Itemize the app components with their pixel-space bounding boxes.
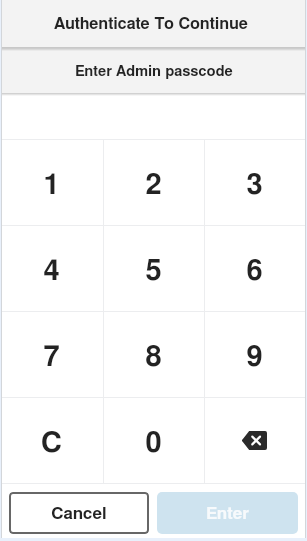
staticText: 5 bbox=[145, 257, 162, 286]
button[interactable]: 7 bbox=[2, 312, 103, 397]
button[interactable]: 8 bbox=[104, 312, 204, 397]
staticText: 4 bbox=[43, 257, 60, 286]
staticText: 7 bbox=[43, 343, 60, 372]
staticText: 9 bbox=[246, 343, 263, 372]
staticText: 1 bbox=[43, 171, 60, 200]
staticText: Enter Admin passcode bbox=[75, 64, 233, 79]
button[interactable]: 6 bbox=[205, 226, 305, 311]
staticText: Enter bbox=[206, 505, 249, 522]
button[interactable]: C bbox=[2, 398, 103, 483]
staticText: 3 bbox=[246, 171, 263, 200]
button[interactable]: 5 bbox=[104, 226, 204, 311]
button[interactable]: 3 bbox=[205, 140, 305, 225]
button[interactable]: 2 bbox=[104, 140, 204, 225]
staticText: C bbox=[41, 429, 62, 458]
staticText: 6 bbox=[246, 257, 263, 286]
staticText: 2 bbox=[145, 171, 162, 200]
button[interactable]: 1 bbox=[2, 140, 103, 225]
button[interactable]: 4 bbox=[2, 226, 103, 311]
button[interactable]: Backspace bbox=[205, 398, 305, 483]
button[interactable]: 9 bbox=[205, 312, 305, 397]
staticText: Authenticate To Continue bbox=[54, 16, 248, 32]
button[interactable]: 0 bbox=[104, 398, 204, 483]
staticText: 8 bbox=[145, 343, 162, 372]
staticText: 0 bbox=[145, 429, 162, 458]
button[interactable]: Cancel bbox=[9, 492, 149, 534]
staticText: Cancel bbox=[51, 505, 107, 522]
button[interactable]: Enter bbox=[157, 492, 298, 534]
